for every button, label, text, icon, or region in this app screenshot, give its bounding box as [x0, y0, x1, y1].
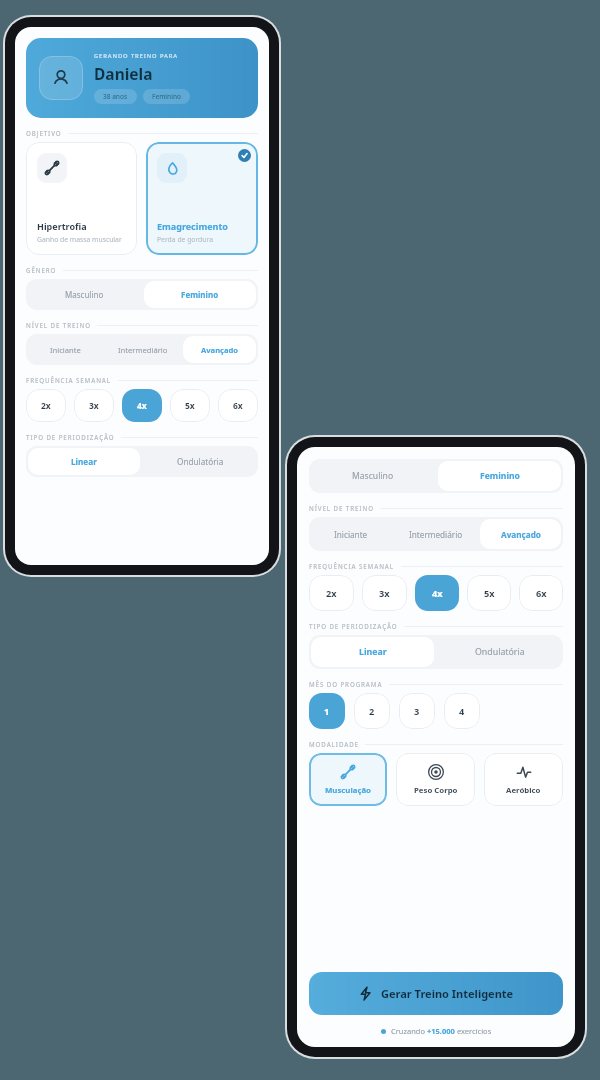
button[interactable]: Linear: [311, 637, 434, 667]
staticText: 2x: [326, 587, 337, 600]
staticText: Feminino: [181, 289, 219, 300]
staticText: 4x: [432, 587, 443, 600]
staticText: NÍVEL DE TREINO: [309, 504, 374, 512]
staticText: Iniciante: [50, 345, 81, 355]
staticText: Avançado: [201, 345, 239, 355]
staticText: Hipertrofia: [37, 220, 87, 232]
staticText: GÊNERO: [26, 266, 57, 274]
button[interactable]: 3: [399, 693, 435, 729]
staticText: Masculino: [352, 470, 394, 482]
staticText: 5x: [484, 587, 495, 600]
button[interactable]: Aeróbico: [484, 753, 563, 806]
button[interactable]: 4x: [415, 575, 459, 611]
button[interactable]: 2x: [309, 575, 354, 611]
staticText: 2x: [41, 400, 51, 412]
staticText: Intermediário: [409, 529, 463, 540]
button[interactable]: Peso Corpo: [396, 753, 475, 806]
staticText: Intermediário: [118, 345, 168, 355]
button[interactable]: 5x: [170, 389, 210, 422]
staticText: Emagrecimento: [157, 220, 228, 232]
staticText: MÊS DO PROGRAMA: [309, 680, 383, 688]
staticText: Gerar Treino Inteligente: [381, 986, 514, 1001]
staticText: Daniela: [94, 63, 153, 84]
button[interactable]: Gerar Treino Inteligente: [309, 972, 563, 1015]
button[interactable]: 1: [309, 693, 345, 729]
button[interactable]: 5x: [467, 575, 511, 611]
staticText: MODALIDADE: [309, 740, 359, 748]
staticText: 38 anos: [103, 92, 128, 101]
staticText: +15.000: [427, 1026, 455, 1036]
staticText: Peso Corpo: [414, 785, 458, 796]
button[interactable]: 2: [354, 693, 390, 729]
staticText: 3x: [89, 400, 99, 412]
button[interactable]: Iniciante: [311, 519, 391, 549]
staticText: 1: [324, 705, 330, 718]
staticText: 4: [459, 705, 465, 718]
staticText: FREQUÊNCIA SEMANAL: [309, 562, 395, 570]
staticText: Aeróbico: [506, 785, 541, 796]
staticText: Linear: [71, 456, 97, 467]
staticText: TIPO DE PERIODIZAÇÃO: [309, 622, 398, 630]
staticText: 5x: [185, 400, 195, 412]
staticText: 4x: [137, 400, 147, 412]
staticText: 2: [369, 705, 375, 718]
button[interactable]: Emagrecimento: [146, 142, 258, 255]
staticText: 3: [414, 705, 420, 718]
button[interactable]: 3x: [362, 575, 407, 611]
staticText: Avançado: [501, 529, 541, 540]
staticText: 3x: [379, 587, 390, 600]
staticText: Feminino: [152, 92, 181, 101]
staticText: Perda de gordura: [157, 235, 213, 244]
staticText: Ondulatória: [475, 646, 525, 658]
staticText: Ganho de massa muscular: [37, 235, 122, 244]
button[interactable]: 6x: [218, 389, 258, 422]
button[interactable]: Musculação: [309, 753, 387, 806]
button[interactable]: Feminino: [144, 281, 256, 308]
staticText: Musculação: [325, 785, 371, 796]
button[interactable]: Avançado: [183, 336, 256, 363]
staticText: GERANDO TREINO PARA: [94, 52, 179, 60]
staticText: Cruzando: [391, 1026, 427, 1036]
button[interactable]: 6x: [519, 575, 563, 611]
button[interactable]: Intermediário: [106, 336, 179, 363]
button[interactable]: Linear: [28, 448, 140, 475]
staticText: TIPO DE PERIODIZAÇÃO: [26, 433, 115, 441]
button[interactable]: GERANDO TREINO PARA: [26, 38, 258, 118]
staticText: NÍVEL DE TREINO: [26, 321, 91, 329]
staticText: OBJETIVO: [26, 129, 62, 137]
staticText: 6x: [233, 400, 243, 412]
staticText: Ondulatória: [177, 456, 224, 467]
button[interactable]: 4x: [122, 389, 162, 422]
button[interactable]: 3x: [74, 389, 114, 422]
button[interactable]: Ondulatória: [438, 637, 561, 667]
staticText: FREQUÊNCIA SEMANAL: [26, 376, 112, 384]
button[interactable]: Avançado: [480, 519, 561, 549]
staticText: exercícios: [455, 1026, 492, 1036]
button[interactable]: Ondulatória: [144, 448, 256, 475]
staticText: Feminino: [480, 470, 520, 482]
button[interactable]: Hipertrofia: [37, 153, 126, 244]
button[interactable]: Feminino: [438, 461, 561, 491]
button[interactable]: Iniciante: [28, 336, 102, 363]
staticText: 6x: [536, 587, 547, 600]
staticText: Masculino: [65, 289, 104, 300]
button[interactable]: 2x: [26, 389, 66, 422]
button[interactable]: 4: [444, 693, 480, 729]
button[interactable]: Masculino: [28, 281, 140, 308]
button[interactable]: Masculino: [311, 461, 434, 491]
staticText: Linear: [359, 646, 387, 658]
button[interactable]: Intermediário: [395, 519, 476, 549]
staticText: Iniciante: [334, 529, 368, 540]
